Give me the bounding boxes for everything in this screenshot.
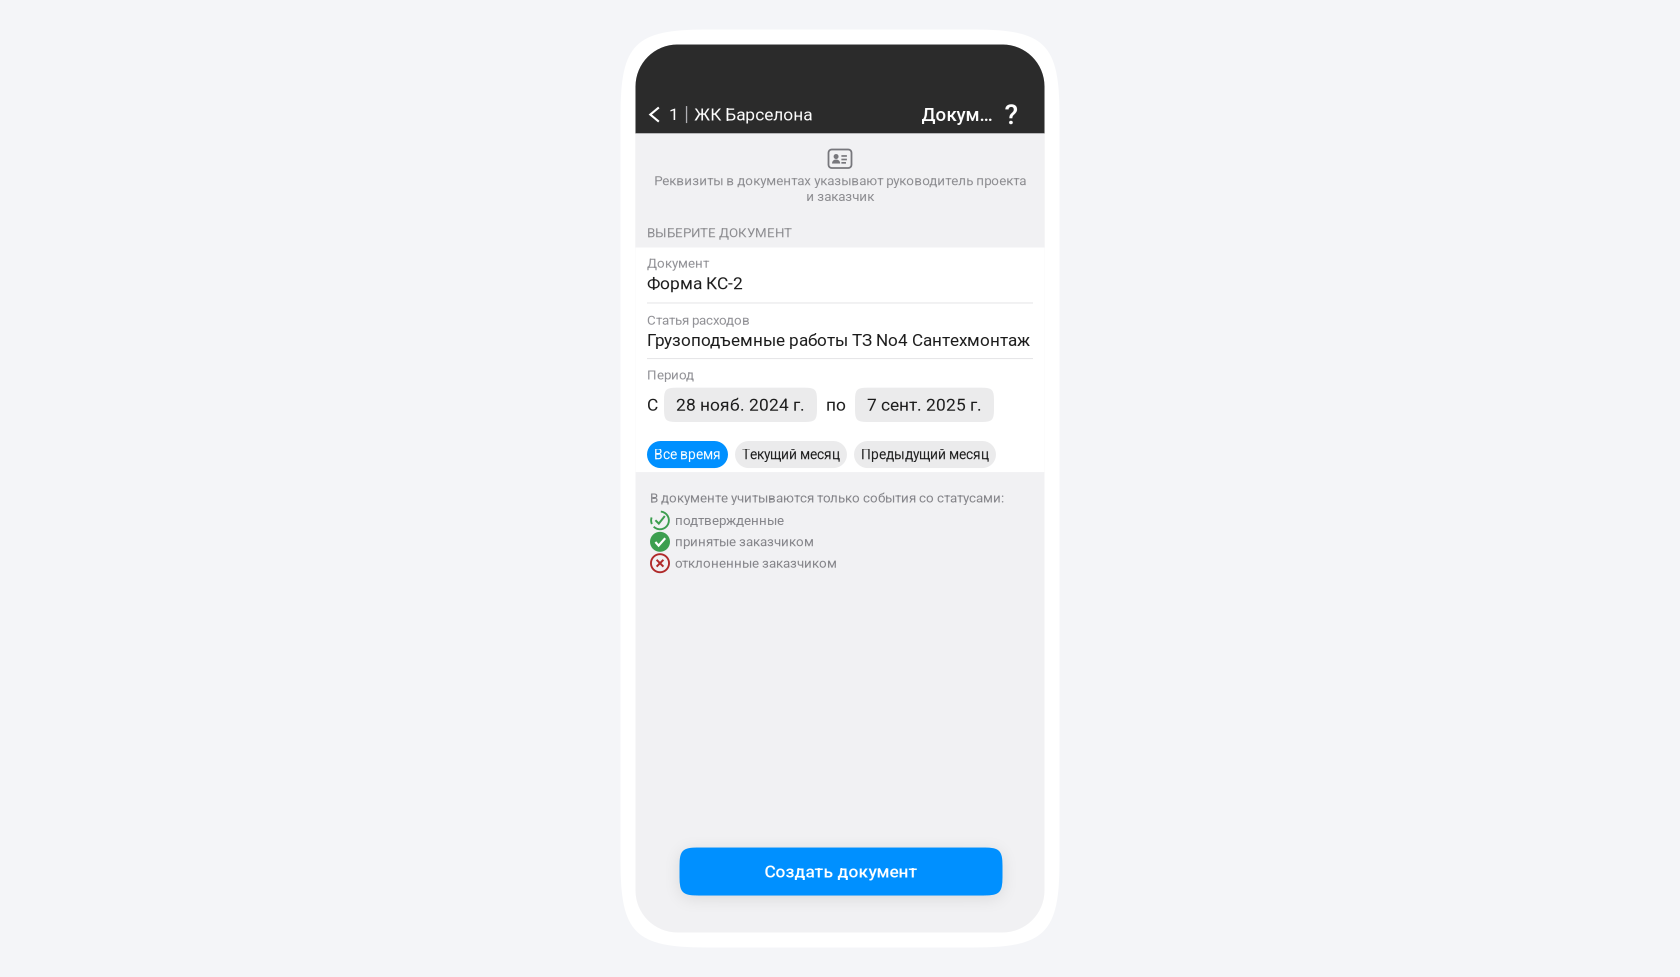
staticText: Грузоподъемные работы ТЗ No4 Сантехмонта… [647,330,1030,350]
staticText: 1 [669,104,679,125]
button[interactable]: 7 сент. 2025 г. [855,388,994,422]
staticText: Текущий месяц [742,446,840,463]
button[interactable]: Текущий месяц [735,441,847,468]
staticText: отклоненные заказчиком [675,555,837,571]
button[interactable]: Статья расходов [635,303,1044,358]
staticText: принятые заказчиком [675,534,814,550]
button[interactable]: Справка [998,102,1024,128]
staticText: С [647,395,658,415]
staticText: Создать документ [764,861,917,882]
staticText: ЖК Барселона [694,104,812,125]
button[interactable]: Докум… [915,97,998,132]
staticText: подтвержденные [675,513,784,528]
staticText: 28 нояб. 2024 г. [676,395,805,415]
button[interactable]: Все время [647,441,728,468]
button[interactable]: 1 [635,97,812,132]
staticText: по [826,395,846,415]
staticText: Статья расходов [647,312,750,328]
staticText: 7 сент. 2025 г. [867,395,982,415]
staticText: Форма КС-2 [647,273,743,293]
staticText: Период [647,367,694,383]
staticText: Докум… [921,104,992,125]
button[interactable]: 28 нояб. 2024 г. [664,388,817,422]
button[interactable]: Создать документ [679,847,1002,895]
staticText: Все время [654,446,721,463]
staticText: ? [1004,98,1018,131]
staticText: ВЫБЕРИТЕ ДОКУМЕНТ [647,225,792,240]
staticText: Документ [647,255,709,271]
staticText: Предыдущий месяц [861,446,989,463]
button[interactable]: Документ [635,247,1044,302]
button[interactable]: Предыдущий месяц [854,441,996,468]
staticText: Реквизиты в документах указывают руковод… [654,173,1026,204]
staticText: В документе учитываются только события с… [650,490,1004,506]
